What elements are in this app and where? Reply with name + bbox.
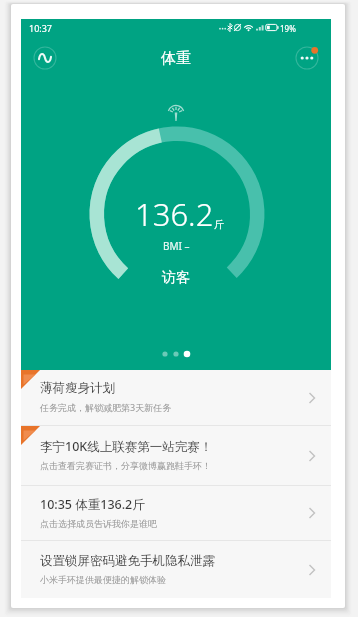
button[interactable]: 设置锁屏密码避免手机隐私泄露: [21, 541, 331, 598]
staticText: 10:35 体重136.2斤: [40, 496, 145, 513]
staticText: 点击查看完赛证书，分享微博赢跑鞋手环！: [40, 460, 211, 471]
button[interactable]: More options: [289, 40, 325, 76]
button[interactable]: Heart rate: [27, 40, 63, 76]
staticText: 体重: [161, 49, 191, 68]
staticText: 小米手环提供最便捷的解锁体验: [40, 574, 166, 585]
staticText: 访客: [162, 269, 190, 287]
staticText: 李宁10K线上联赛第一站完赛！: [40, 438, 213, 455]
button[interactable]: 李宁10K线上联赛第一站完赛！: [21, 426, 331, 485]
staticText: 10:37: [29, 22, 53, 34]
staticText: 19%: [280, 23, 296, 34]
staticText: 设置锁屏密码避免手机隐私泄露: [40, 553, 215, 569]
button[interactable]: 薄荷瘦身计划: [21, 370, 331, 425]
staticText: 点击选择成员告诉我你是谁吧: [40, 518, 157, 529]
staticText: 136.2: [135, 193, 214, 235]
staticText: 任务完成，解锁减肥第3天新任务: [40, 401, 172, 413]
staticText: BMI –: [163, 239, 190, 253]
button[interactable]: 10:35 体重136.2斤: [21, 486, 331, 540]
staticText: 斤: [214, 218, 224, 231]
staticText: 薄荷瘦身计划: [40, 380, 115, 396]
